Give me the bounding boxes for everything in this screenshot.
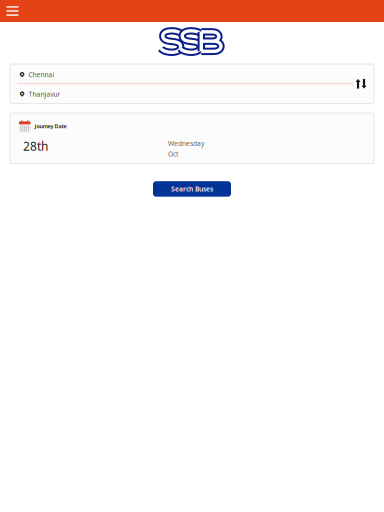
button[interactable]: Search Buses	[153, 181, 231, 197]
staticText: Chennai	[29, 70, 55, 79]
button[interactable]: Swap source and destination	[348, 64, 374, 104]
staticText: Journey Date	[34, 123, 66, 130]
staticText: Search Buses	[171, 184, 213, 193]
button[interactable]: Journey Date	[10, 113, 374, 164]
button[interactable]: Menu	[0, 0, 25, 22]
staticText: 28th	[23, 138, 48, 154]
staticText: Wednesday	[168, 139, 204, 148]
staticText: Thanjavur	[29, 90, 61, 99]
button[interactable]: Chennai	[10, 64, 374, 83]
staticText: Oct	[168, 149, 178, 158]
button[interactable]: Thanjavur	[10, 83, 374, 103]
